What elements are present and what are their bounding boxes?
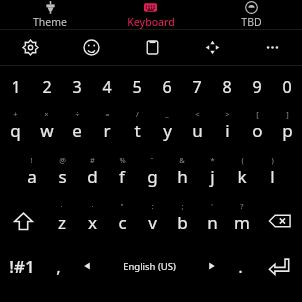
button[interactable]: 8: [212, 68, 242, 106]
button[interactable]: %: [107, 152, 137, 198]
button[interactable]: More options: [242, 30, 302, 65]
staticText: ÷: [75, 109, 80, 119]
button[interactable]: ˜: [137, 152, 167, 198]
button[interactable]: ;: [167, 198, 197, 244]
button[interactable]: ,: [43, 244, 74, 288]
button[interactable]: 5: [122, 68, 152, 106]
staticText: t: [134, 119, 141, 142]
staticText: d: [87, 165, 98, 188]
button[interactable]: 4: [92, 68, 122, 106]
button[interactable]: ·: [46, 198, 77, 244]
button[interactable]: ": [107, 198, 137, 244]
staticText: ×: [44, 109, 49, 119]
button[interactable]: Backspace: [257, 198, 302, 244]
button[interactable]: [: [242, 106, 272, 152]
button[interactable]: Enter: [256, 244, 302, 288]
staticText: 5: [132, 76, 142, 98]
staticText: +: [13, 109, 18, 119]
button[interactable]: ?: [227, 198, 257, 244]
button[interactable]: /: [122, 106, 152, 152]
staticText: ]: [286, 109, 289, 119]
button[interactable]: Theme: [0, 0, 100, 29]
staticText: [: [256, 109, 259, 119]
staticText: #: [90, 155, 95, 165]
staticText: 1: [11, 76, 21, 98]
button[interactable]: Emoji: [61, 30, 122, 65]
button[interactable]: 1: [0, 68, 31, 106]
staticText: 9: [252, 76, 262, 98]
staticText: 4: [102, 76, 112, 98]
button[interactable]: +: [0, 106, 31, 152]
button[interactable]: 6: [152, 68, 182, 106]
button[interactable]: ·: [77, 198, 107, 244]
button[interactable]: #: [77, 152, 107, 198]
staticText: 7: [192, 76, 202, 98]
button[interactable]: 3: [62, 68, 92, 106]
staticText: ,: [56, 255, 61, 278]
button[interactable]: !: [16, 152, 47, 198]
staticText: 3: [72, 76, 82, 98]
button[interactable]: :: [137, 198, 167, 244]
staticText: x: [88, 211, 97, 234]
button[interactable]: 9: [242, 68, 272, 106]
staticText: ): [271, 155, 274, 165]
staticText: &: [179, 155, 185, 165]
staticText: j: [210, 165, 215, 188]
staticText: TBD: [241, 15, 262, 29]
staticText: ·: [91, 201, 94, 211]
button[interactable]: Previous language: [74, 244, 100, 288]
button[interactable]: .: [225, 244, 256, 288]
staticText: /: [136, 109, 139, 119]
staticText: m: [234, 211, 250, 234]
button[interactable]: Clipboard: [122, 30, 182, 65]
staticText: n: [207, 211, 218, 234]
button[interactable]: !#1: [0, 244, 43, 288]
button[interactable]: (: [227, 152, 257, 198]
button[interactable]: 7: [182, 68, 212, 106]
staticText: q: [10, 119, 21, 142]
staticText: (: [241, 155, 244, 165]
button[interactable]: ×: [31, 106, 62, 152]
button[interactable]: ]: [272, 106, 302, 152]
button[interactable]: *: [197, 152, 227, 198]
staticText: o: [252, 119, 263, 142]
staticText: c: [118, 211, 127, 234]
staticText: >: [225, 109, 230, 119]
staticText: ': [211, 201, 213, 211]
button[interactable]: English (US): [100, 244, 199, 288]
button[interactable]: Move cursor: [182, 30, 242, 65]
staticText: 0: [282, 76, 292, 98]
staticText: Theme: [33, 15, 67, 29]
staticText: z: [58, 211, 66, 234]
staticText: ˜: [150, 155, 154, 165]
staticText: u: [192, 119, 203, 142]
button[interactable]: Shift: [0, 198, 46, 244]
button[interactable]: Settings: [0, 30, 61, 65]
staticText: @: [59, 155, 66, 165]
staticText: <: [195, 109, 200, 119]
staticText: ;: [181, 201, 184, 211]
button[interactable]: 2: [31, 68, 62, 106]
staticText: l: [270, 165, 275, 188]
button[interactable]: =: [92, 106, 122, 152]
button[interactable]: ): [257, 152, 287, 198]
button[interactable]: 0: [272, 68, 302, 106]
button[interactable]: >: [212, 106, 242, 152]
button[interactable]: &: [167, 152, 197, 198]
staticText: _: [165, 109, 169, 119]
button[interactable]: @: [47, 152, 77, 198]
button[interactable]: Next language: [199, 244, 225, 288]
staticText: 8: [222, 76, 232, 98]
button[interactable]: TBD: [201, 0, 302, 29]
staticText: r: [103, 119, 111, 142]
button[interactable]: <: [182, 106, 212, 152]
staticText: %: [119, 155, 126, 165]
button[interactable]: ': [197, 198, 227, 244]
staticText: 6: [162, 76, 172, 98]
staticText: w: [40, 119, 54, 142]
staticText: h: [177, 165, 188, 188]
button[interactable]: _: [152, 106, 182, 152]
button[interactable]: Keyboard: [100, 0, 201, 29]
button[interactable]: ÷: [62, 106, 92, 152]
staticText: k: [237, 165, 247, 188]
